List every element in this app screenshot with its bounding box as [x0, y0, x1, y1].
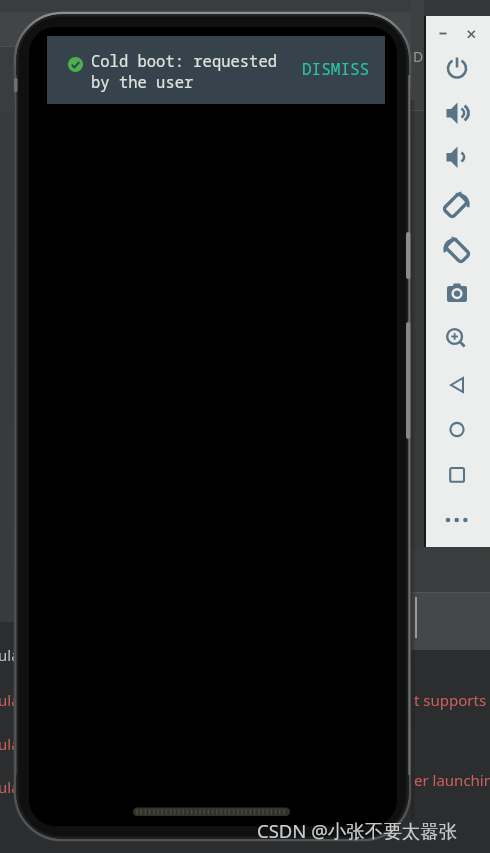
button[interactable]: [441, 98, 471, 128]
button[interactable]: [462, 24, 482, 44]
staticText: CSDN @小张不要太嚣张: [257, 818, 458, 843]
button[interactable]: [440, 322, 470, 352]
staticText: t supports: [414, 690, 487, 710]
staticText: ula: [0, 777, 20, 797]
button[interactable]: [442, 505, 472, 535]
staticText: ula: [0, 734, 20, 754]
staticText: ula: [0, 690, 20, 710]
button[interactable]: [442, 278, 472, 308]
staticText: er launching: [414, 770, 490, 790]
button[interactable]: [442, 415, 472, 445]
button[interactable]: [442, 189, 472, 219]
button[interactable]: [442, 53, 472, 83]
button[interactable]: [442, 370, 472, 400]
staticText: Cold boot: requested by the user: [91, 50, 278, 93]
button[interactable]: [441, 142, 471, 172]
staticText: Dis: [413, 47, 434, 66]
button[interactable]: [433, 24, 453, 44]
button[interactable]: [442, 460, 472, 490]
button[interactable]: [441, 234, 471, 264]
button[interactable]: DISMISS: [295, 52, 377, 86]
staticText: ula: [0, 645, 20, 665]
staticText: DISMISS: [302, 58, 370, 80]
